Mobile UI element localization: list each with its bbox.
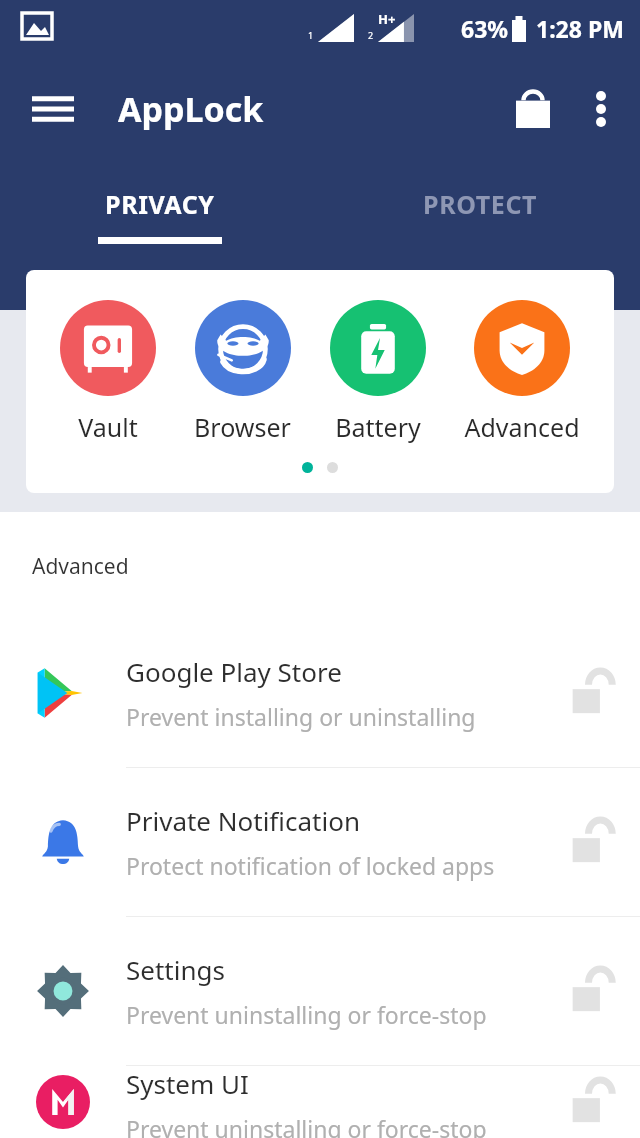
button[interactable]: Toggle lock for Private Notification	[544, 768, 640, 916]
staticText: AppLock	[118, 86, 264, 132]
button[interactable]: Settings	[0, 917, 640, 1065]
staticText: 63%	[461, 13, 509, 44]
button[interactable]: Toggle lock for System UI	[544, 1066, 640, 1138]
staticText: PRIVACY	[105, 187, 215, 221]
staticText: Prevent installing or uninstalling	[126, 701, 476, 732]
button[interactable]: Store	[504, 80, 562, 138]
staticText: Google Play Store	[126, 654, 342, 689]
staticText: 1	[308, 29, 314, 41]
button[interactable]: More options	[572, 80, 630, 138]
button[interactable]: Toggle lock for Google Play Store	[544, 619, 640, 767]
button[interactable]: Advanced	[460, 300, 584, 444]
staticText: Prevent uninstalling or force-stop	[126, 999, 487, 1030]
staticText: System UI	[126, 1066, 249, 1101]
button[interactable]: Google Play Store	[0, 619, 640, 767]
staticText: Battery	[335, 410, 421, 444]
button[interactable]: Open navigation menu	[22, 78, 84, 140]
button[interactable]: PRIVACY	[0, 161, 320, 261]
button[interactable]: Browser	[190, 300, 295, 444]
staticText: Advanced	[32, 552, 129, 581]
staticText: 1:28 PM	[536, 13, 624, 44]
staticText: 2	[368, 29, 374, 41]
button[interactable]: Battery	[326, 300, 430, 444]
staticText: Protect notification of locked apps	[126, 850, 495, 881]
button[interactable]: Toggle lock for Settings	[544, 917, 640, 1065]
button[interactable]: Private Notification	[0, 768, 640, 916]
button[interactable]: PROTECT	[320, 161, 640, 261]
button[interactable]: Vault	[56, 300, 160, 444]
button[interactable]: System UI	[0, 1066, 640, 1138]
staticText: Vault	[78, 410, 138, 444]
staticText: Settings	[126, 952, 225, 987]
staticText: H+	[378, 10, 396, 28]
staticText: PROTECT	[423, 187, 538, 221]
staticText: Private Notification	[126, 803, 360, 838]
staticText: Browser	[194, 410, 291, 444]
staticText: Prevent uninstalling or force-stop	[126, 1113, 487, 1138]
staticText: Advanced	[464, 410, 580, 444]
